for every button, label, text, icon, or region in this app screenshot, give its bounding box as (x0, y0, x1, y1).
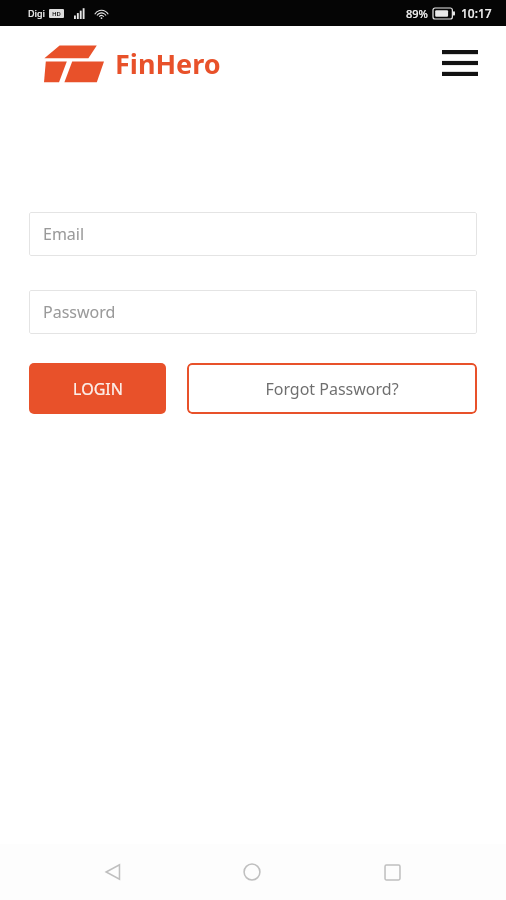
button[interactable]: Home (226, 848, 278, 896)
button[interactable]: Email (29, 212, 477, 256)
button[interactable]: Back (87, 848, 139, 896)
staticText: HD (52, 10, 61, 18)
button[interactable]: Forgot Password? (187, 363, 477, 414)
staticText: 10:17 (461, 5, 492, 21)
staticText: Email (43, 223, 85, 245)
staticText: Digi (28, 7, 46, 19)
staticText: FinHero (115, 45, 221, 82)
staticText: 89% (406, 6, 428, 21)
button[interactable]: LOGIN (29, 363, 166, 414)
staticText: Password (43, 301, 116, 323)
button[interactable]: Open navigation menu (438, 41, 482, 85)
button[interactable]: FinHero (44, 43, 221, 83)
staticText: Forgot Password? (265, 378, 399, 400)
button[interactable]: Recent apps (366, 848, 418, 896)
button[interactable]: Password (29, 290, 477, 334)
staticText: LOGIN (73, 378, 123, 400)
